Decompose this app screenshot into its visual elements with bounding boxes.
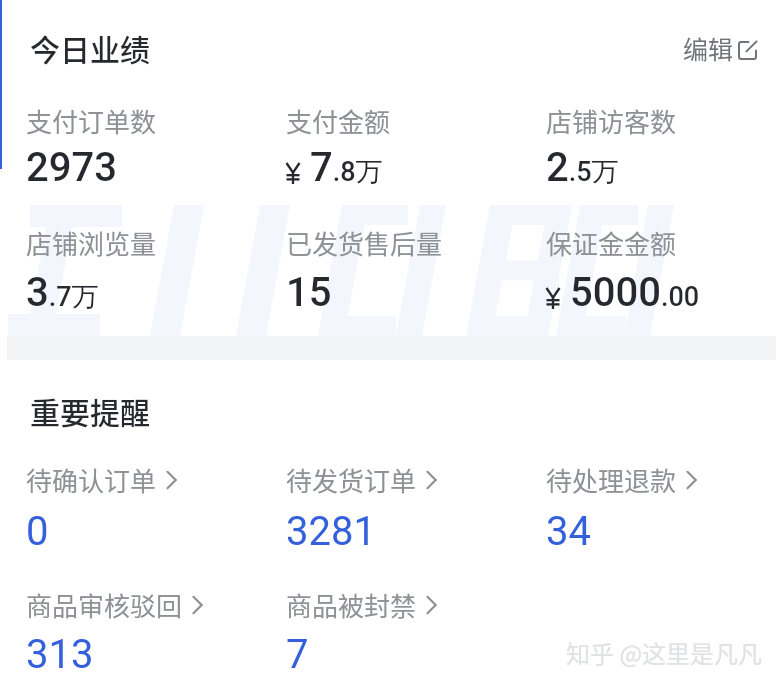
staticText: 今日业绩 <box>30 26 150 69</box>
button[interactable]: 待发货订单 <box>286 461 438 499</box>
staticText: 2.5万 <box>546 144 619 191</box>
staticText: 待发货订单 <box>286 461 417 499</box>
staticText: 重要提醒 <box>30 389 150 432</box>
staticText: 支付订单数 <box>26 102 157 140</box>
button[interactable]: 待确认订单 <box>26 461 178 499</box>
staticText: 保证金金额 <box>546 224 677 262</box>
staticText: 已发货售后量 <box>286 224 443 262</box>
staticText: 5000.00 <box>570 269 700 316</box>
staticText: 店铺浏览量 <box>26 224 157 262</box>
other: 编辑 Edit <box>737 40 757 60</box>
staticText: 7.8万 <box>310 144 383 191</box>
staticText: 0 <box>26 508 49 555</box>
staticText: 支付金额 <box>286 102 391 140</box>
staticText: 商品审核驳回 <box>26 586 183 624</box>
staticText: 313 <box>26 631 94 678</box>
staticText: 编辑 <box>683 30 734 66</box>
staticText: 3281 <box>286 508 376 555</box>
staticText: 34 <box>546 508 591 555</box>
staticText: 15 <box>286 269 332 316</box>
staticText: 待确认订单 <box>26 461 157 499</box>
staticText: 待处理退款 <box>546 461 677 499</box>
button[interactable]: 商品被封禁 <box>286 586 438 624</box>
staticText: 知乎 @这里是凡凡 <box>566 635 763 670</box>
button[interactable]: 商品审核驳回 <box>26 586 204 624</box>
button[interactable]: 编辑 <box>683 30 757 66</box>
staticText: 3.7万 <box>26 269 99 316</box>
staticText: 店铺访客数 <box>546 102 677 140</box>
staticText: 2973 <box>26 144 117 191</box>
staticText: 7 <box>286 631 309 678</box>
staticText: 商品被封禁 <box>286 586 417 624</box>
button[interactable]: 待处理退款 <box>546 461 698 499</box>
